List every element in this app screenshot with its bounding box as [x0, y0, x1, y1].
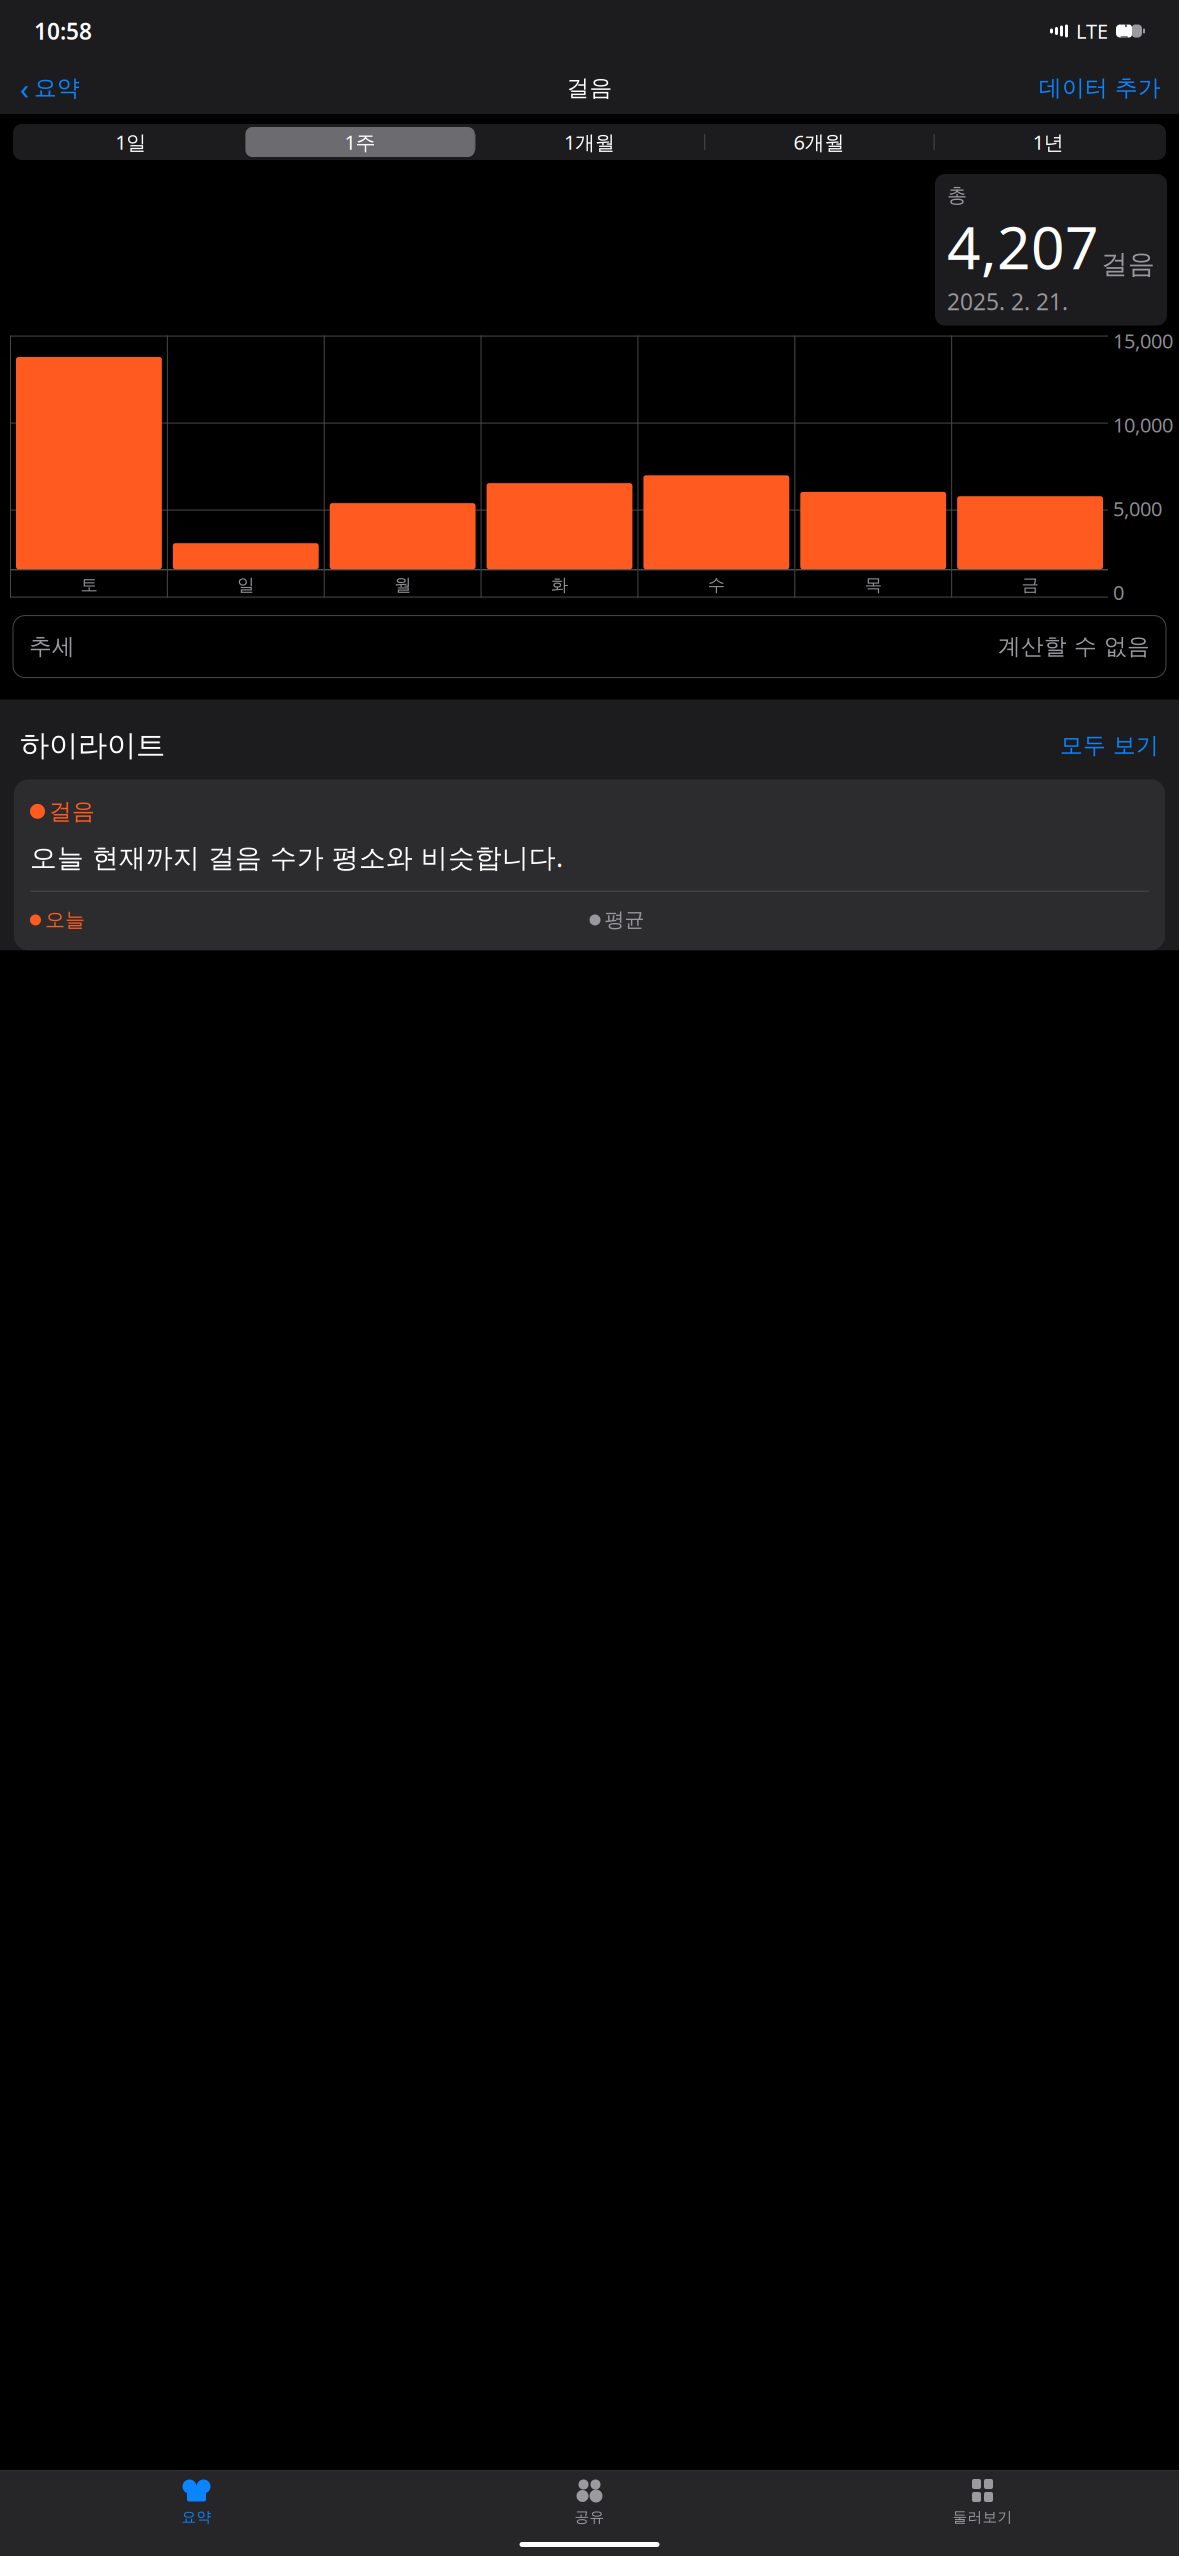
- staticText: 1개월: [564, 129, 615, 155]
- staticText: 월: [394, 574, 411, 596]
- staticText: 걸음: [1101, 248, 1155, 280]
- staticText: 하이라이트: [20, 727, 165, 763]
- button[interactable]: 둘러보기: [786, 2477, 1179, 2525]
- button[interactable]: 추세: [13, 616, 1166, 678]
- staticText: 오늘: [45, 908, 85, 932]
- staticText: 수: [708, 574, 725, 596]
- button[interactable]: 요약: [0, 2477, 393, 2525]
- staticText: 모두 보기: [1060, 732, 1159, 759]
- staticText: 0: [1113, 579, 1124, 606]
- staticText: 데이터 추가: [1039, 74, 1161, 102]
- staticText: 10,000: [1113, 411, 1173, 438]
- staticText: 토: [80, 574, 97, 596]
- staticText: 10:58: [34, 16, 92, 46]
- staticText: ‹: [20, 68, 29, 107]
- button[interactable]: 6개월: [704, 127, 934, 157]
- staticText: 금: [1022, 574, 1039, 596]
- staticText: 공유: [574, 2508, 604, 2526]
- staticText: 1년: [1033, 129, 1064, 155]
- staticText: 47: [1120, 11, 1128, 50]
- button[interactable]: 1일: [16, 127, 245, 157]
- staticText: 요약: [34, 74, 80, 102]
- staticText: 화: [551, 574, 568, 596]
- staticText: 15,000: [1113, 328, 1173, 354]
- staticText: 4,207: [947, 208, 1099, 285]
- button[interactable]: 1년: [934, 127, 1163, 157]
- staticText: 2025. 2. 21.: [947, 286, 1068, 317]
- button[interactable]: 1주: [245, 127, 475, 157]
- staticText: 걸음: [49, 797, 95, 825]
- staticText: 요약: [181, 2508, 211, 2526]
- button[interactable]: 데이터 추가: [1033, 66, 1167, 110]
- staticText: 1일: [115, 129, 146, 155]
- staticText: 5,000: [1113, 495, 1162, 522]
- button[interactable]: 걸음: [14, 779, 1165, 950]
- staticText: 걸음: [566, 74, 612, 102]
- staticText: 1주: [345, 129, 376, 155]
- staticText: 둘러보기: [952, 2508, 1012, 2526]
- staticText: 평균: [604, 908, 644, 932]
- staticText: 일: [237, 574, 254, 596]
- staticText: 6개월: [793, 129, 844, 155]
- staticText: 추세: [29, 633, 75, 660]
- staticText: 목: [865, 574, 882, 596]
- button[interactable]: 1개월: [475, 127, 704, 157]
- button[interactable]: 모두 보기: [1060, 726, 1159, 765]
- staticText: 계산할 수 없음: [998, 633, 1150, 660]
- staticText: 오늘 현재까지 걸음 수가 평소와 비슷합니다.: [30, 839, 563, 875]
- button[interactable]: ‹: [12, 60, 88, 115]
- staticText: LTE: [1076, 18, 1108, 44]
- button[interactable]: 공유: [393, 2477, 786, 2525]
- staticText: 총: [947, 183, 967, 208]
